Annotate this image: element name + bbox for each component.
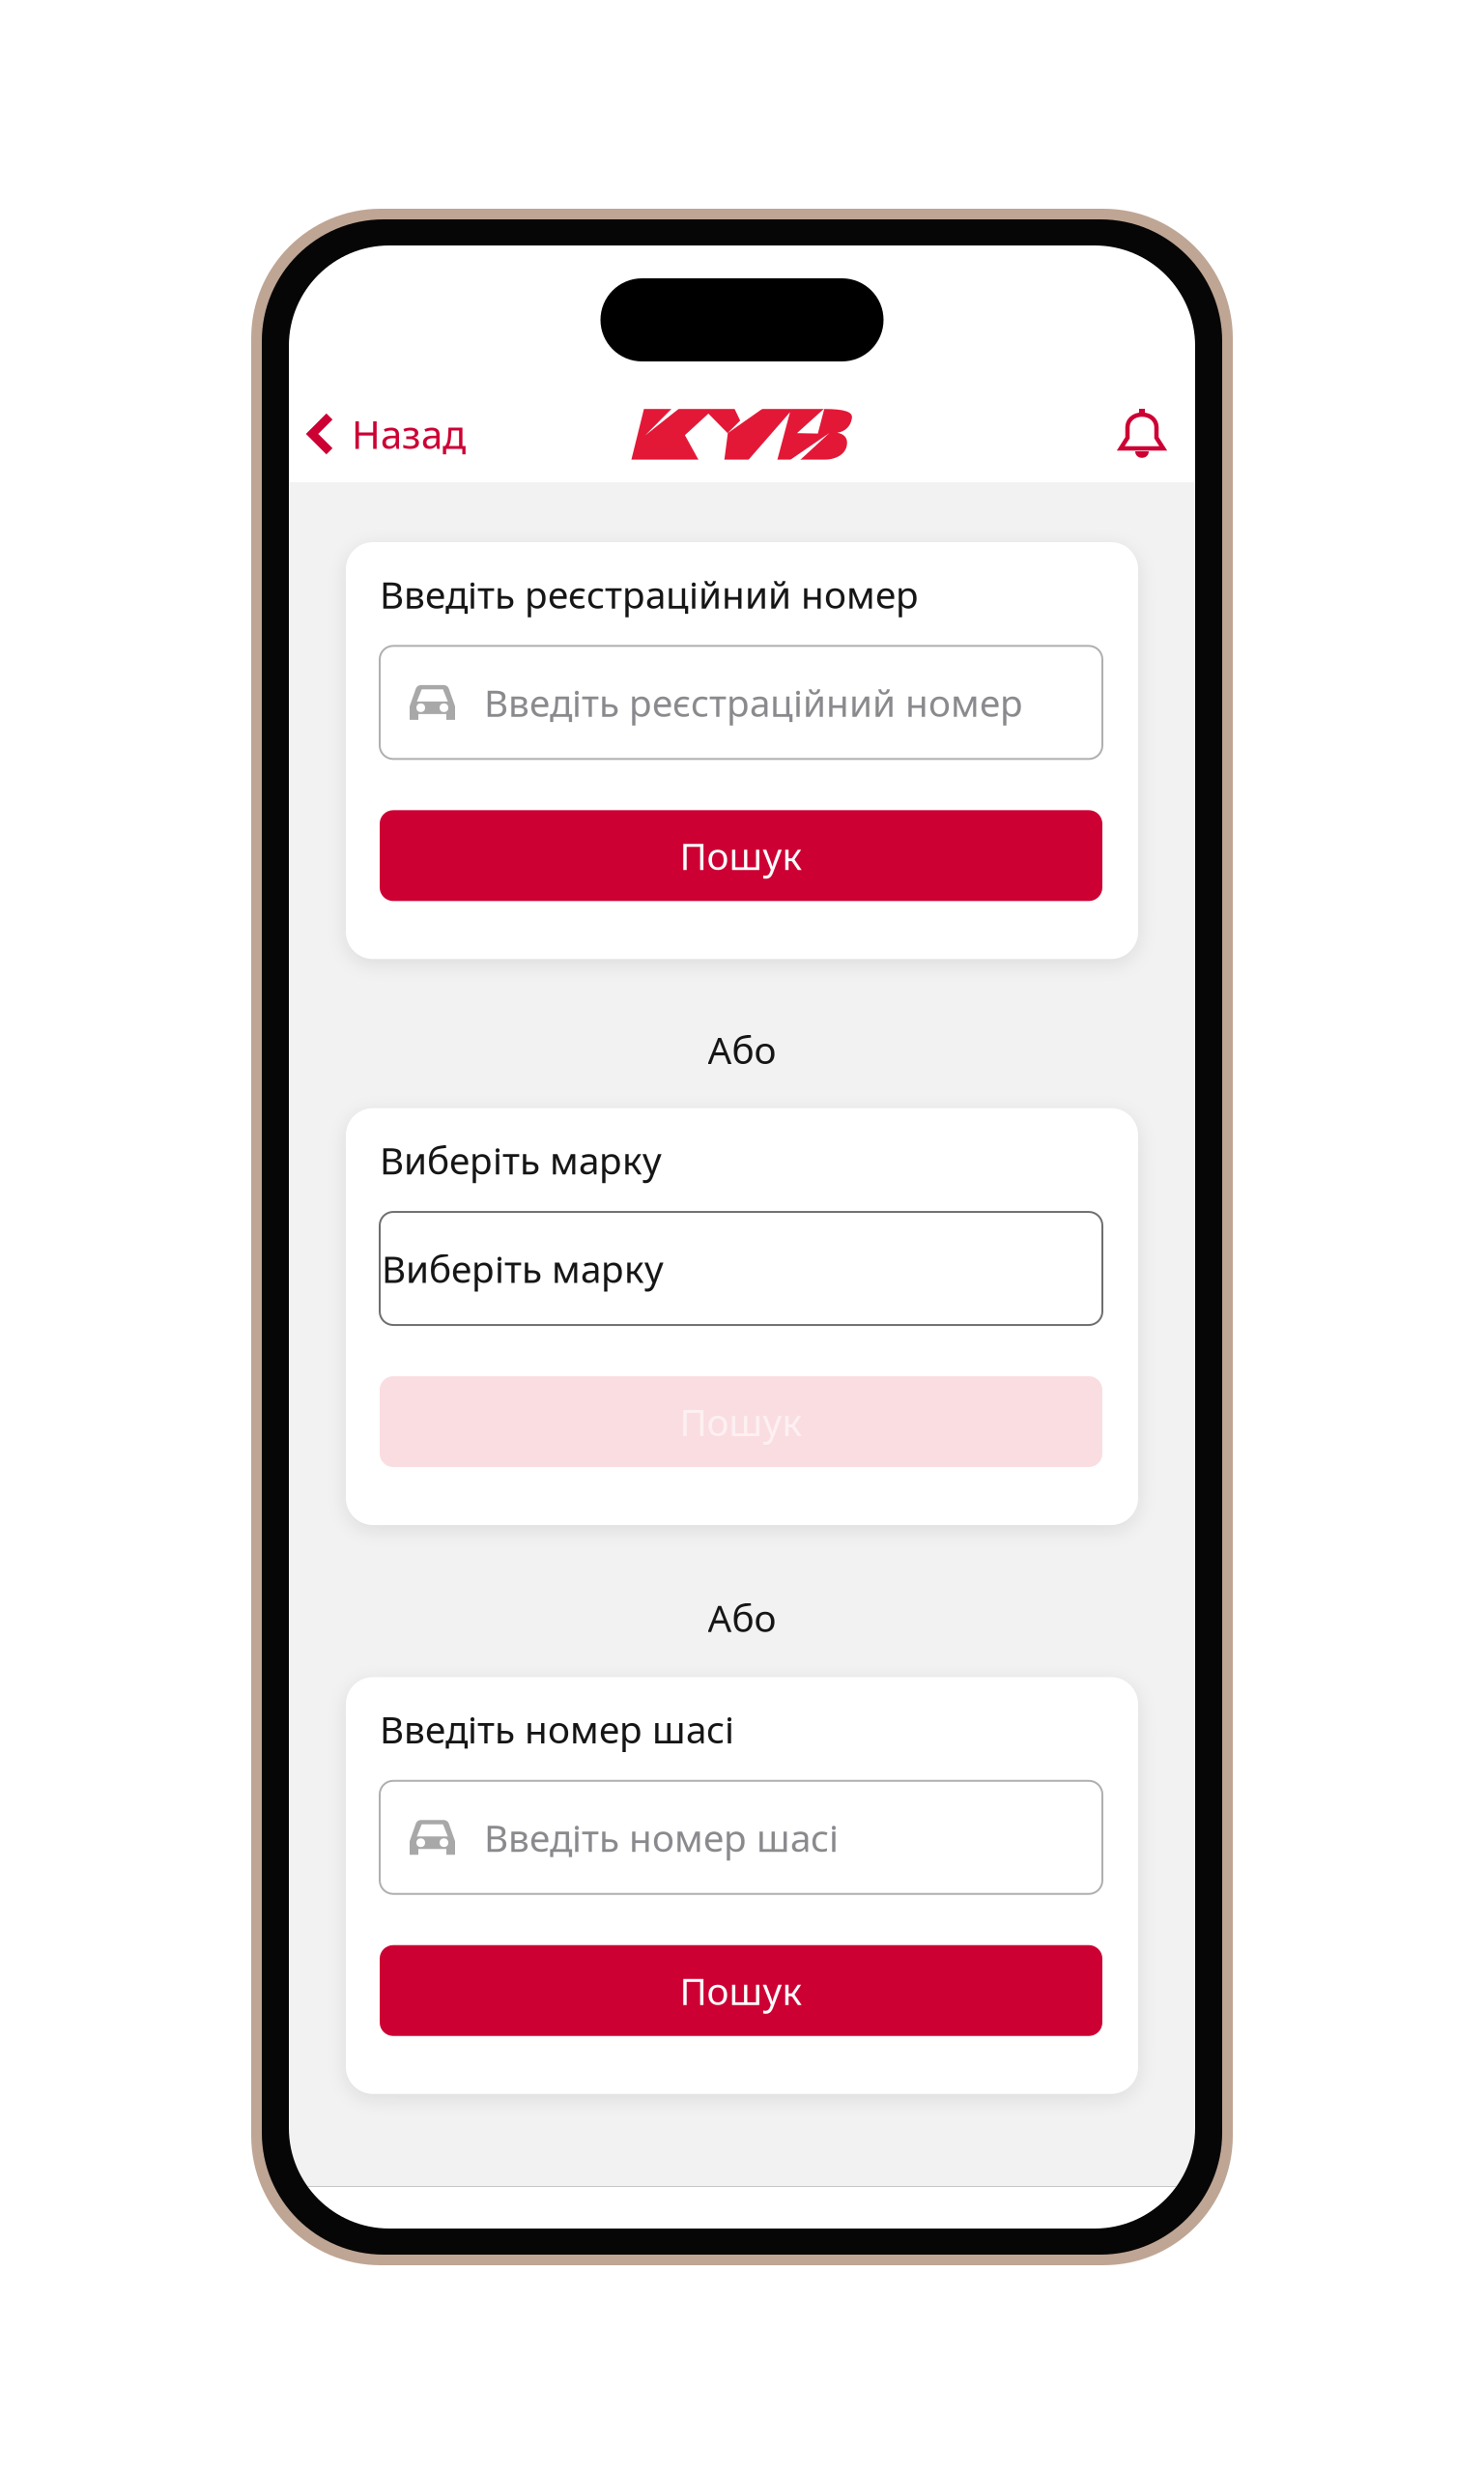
button[interactable]: Пошук (380, 810, 1102, 901)
staticText: Введіть номер шасі (484, 1813, 839, 1862)
button[interactable]: Пошук (380, 1376, 1102, 1467)
staticText: Введіть реєстраційний номер (484, 678, 1023, 727)
staticText: Виберіть марку (380, 1135, 662, 1185)
staticText: Пошук (680, 1966, 802, 2015)
staticText: Назад (352, 408, 466, 460)
button[interactable]: Назад (289, 386, 479, 482)
staticText: Пошук (680, 831, 802, 880)
staticText: Пошук (680, 1397, 802, 1446)
staticText: Або (708, 1025, 776, 1074)
staticText: Виберіть марку (382, 1244, 664, 1293)
button[interactable]: Пошук (380, 1945, 1102, 2036)
staticText: Введіть реєстраційний номер (380, 569, 919, 619)
button[interactable]: Сповіщення (1118, 386, 1195, 482)
staticText: Або (708, 1593, 776, 1642)
staticText: Введіть номер шасі (380, 1704, 734, 1754)
